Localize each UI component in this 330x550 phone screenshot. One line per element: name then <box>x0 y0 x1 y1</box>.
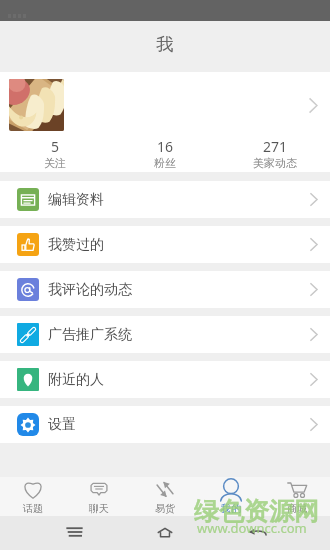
button[interactable]: Recent apps <box>66 527 83 537</box>
staticText: 我赞过的 <box>48 236 104 254</box>
button[interactable]: 271 <box>220 132 330 172</box>
staticText: 我评论的动态 <box>48 281 132 299</box>
staticText: 设置 <box>48 416 76 434</box>
button[interactable]: 5 <box>0 132 110 172</box>
button[interactable]: 我赞过的 <box>0 226 330 263</box>
button[interactable]: 聊天 <box>66 477 132 516</box>
button[interactable]: Home <box>157 526 173 539</box>
button[interactable]: 编辑资料 <box>0 181 330 218</box>
button[interactable]: 设置 <box>0 406 330 443</box>
button[interactable]: 我评论的动态 <box>0 271 330 308</box>
staticText: 我的 <box>221 502 241 515</box>
staticText: 话题 <box>23 502 43 515</box>
staticText: 附近的人 <box>48 371 104 389</box>
staticText: 商城 <box>287 502 307 515</box>
staticText: 粉丝 <box>154 156 176 170</box>
staticText: 5 <box>51 137 60 156</box>
button[interactable]: 广告推广系统 <box>0 316 330 353</box>
staticText: 16 <box>157 137 174 156</box>
staticText: 我 <box>156 33 174 55</box>
button[interactable]: 易货 <box>132 477 198 516</box>
staticText: 易货 <box>155 502 175 515</box>
staticText: 编辑资料 <box>48 191 104 209</box>
button[interactable]: 话题 <box>0 477 66 516</box>
button[interactable]: Back <box>248 527 267 538</box>
staticText: 271 <box>263 137 288 156</box>
staticText: 绿色资源网 <box>194 496 319 527</box>
staticText: 关注 <box>44 156 66 170</box>
staticText: www.downcc.com <box>197 519 307 537</box>
button[interactable] <box>0 72 330 132</box>
button[interactable]: 16 <box>110 132 220 172</box>
button[interactable]: 附近的人 <box>0 361 330 398</box>
button[interactable]: 我的 <box>198 477 264 516</box>
staticText: 聊天 <box>89 502 109 515</box>
button[interactable]: 商城 <box>264 477 330 516</box>
staticText: 广告推广系统 <box>48 326 132 344</box>
staticText: 美家动态 <box>253 156 297 170</box>
